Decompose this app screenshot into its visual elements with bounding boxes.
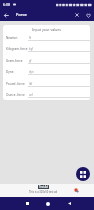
- button[interactable]: Pound -force: [3, 80, 90, 92]
- staticText: Gram-force: [6, 59, 23, 63]
- button[interactable]: Kilogram-force: [3, 45, 90, 57]
- button[interactable]: Dyne: [3, 68, 90, 80]
- staticText: lbf: [29, 82, 33, 86]
- button[interactable]: Ad info: [72, 186, 81, 195]
- staticText: Force: [16, 12, 27, 18]
- button[interactable]: Home: [40, 197, 56, 210]
- button[interactable]: Clear: [71, 9, 82, 21]
- staticText: Kilogram-force: [6, 47, 28, 51]
- button[interactable]: Back: [61, 197, 77, 210]
- staticText: Ounce -force: [6, 93, 25, 97]
- staticText: Test Ad: [39, 185, 48, 189]
- button[interactable]: Ounce -force: [3, 91, 90, 100]
- button[interactable]: Favorite: [82, 9, 94, 21]
- button[interactable]: Newton: [3, 34, 90, 46]
- staticText: This is a 320x50 test ad: [29, 190, 58, 194]
- button[interactable]: Keypad: [76, 167, 90, 181]
- staticText: 6:08: [3, 2, 11, 7]
- staticText: Dyne: [6, 70, 14, 74]
- staticText: gf: [29, 59, 32, 63]
- staticText: dyn: [29, 70, 34, 74]
- staticText: Newton: [6, 36, 18, 40]
- staticText: N: [29, 36, 31, 40]
- button[interactable]: Recents: [19, 197, 35, 210]
- staticText: Pound -force: [6, 82, 25, 86]
- button[interactable]: Back: [0, 9, 12, 21]
- staticText: ozf: [29, 93, 33, 97]
- staticText: kgf: [29, 47, 33, 51]
- staticText: Input your values: [3, 27, 90, 32]
- button[interactable]: Gram-force: [3, 57, 90, 69]
